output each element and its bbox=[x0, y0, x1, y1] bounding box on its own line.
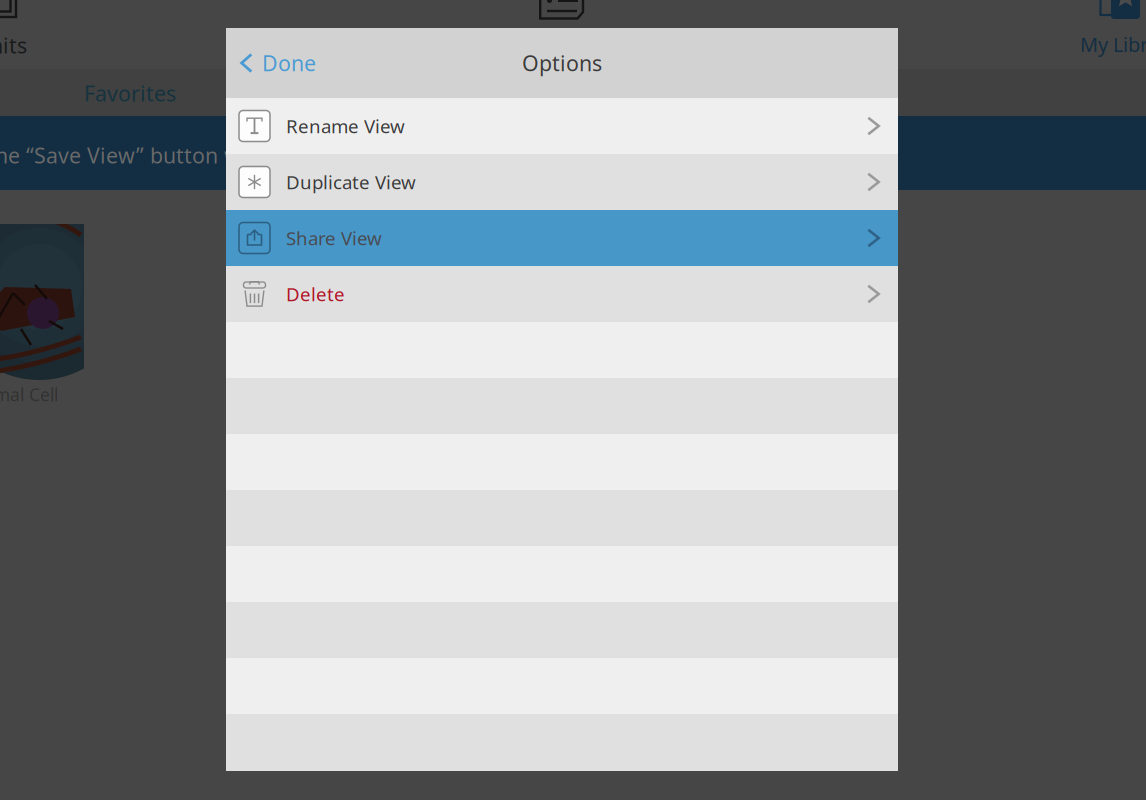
button[interactable]: Done bbox=[226, 39, 316, 87]
staticText: Delete bbox=[286, 282, 345, 306]
staticText: Duplicate View bbox=[286, 170, 416, 194]
button[interactable]: Delete bbox=[226, 266, 898, 322]
staticText: Rename View bbox=[286, 114, 405, 138]
button[interactable]: Duplicate View bbox=[226, 154, 898, 210]
button[interactable]: Share View bbox=[226, 210, 898, 266]
staticText: Create a favorite by tapping the “Save V… bbox=[0, 141, 397, 169]
staticText: My Library bbox=[1080, 31, 1146, 58]
staticText: Animal Cell bbox=[0, 383, 58, 406]
staticText: Favorites bbox=[84, 79, 176, 107]
staticText: Options bbox=[522, 49, 602, 77]
staticText: Done bbox=[262, 49, 316, 77]
button[interactable]: Rename View bbox=[226, 98, 898, 154]
staticText: Share View bbox=[286, 226, 382, 250]
staticText: Units bbox=[0, 31, 27, 59]
